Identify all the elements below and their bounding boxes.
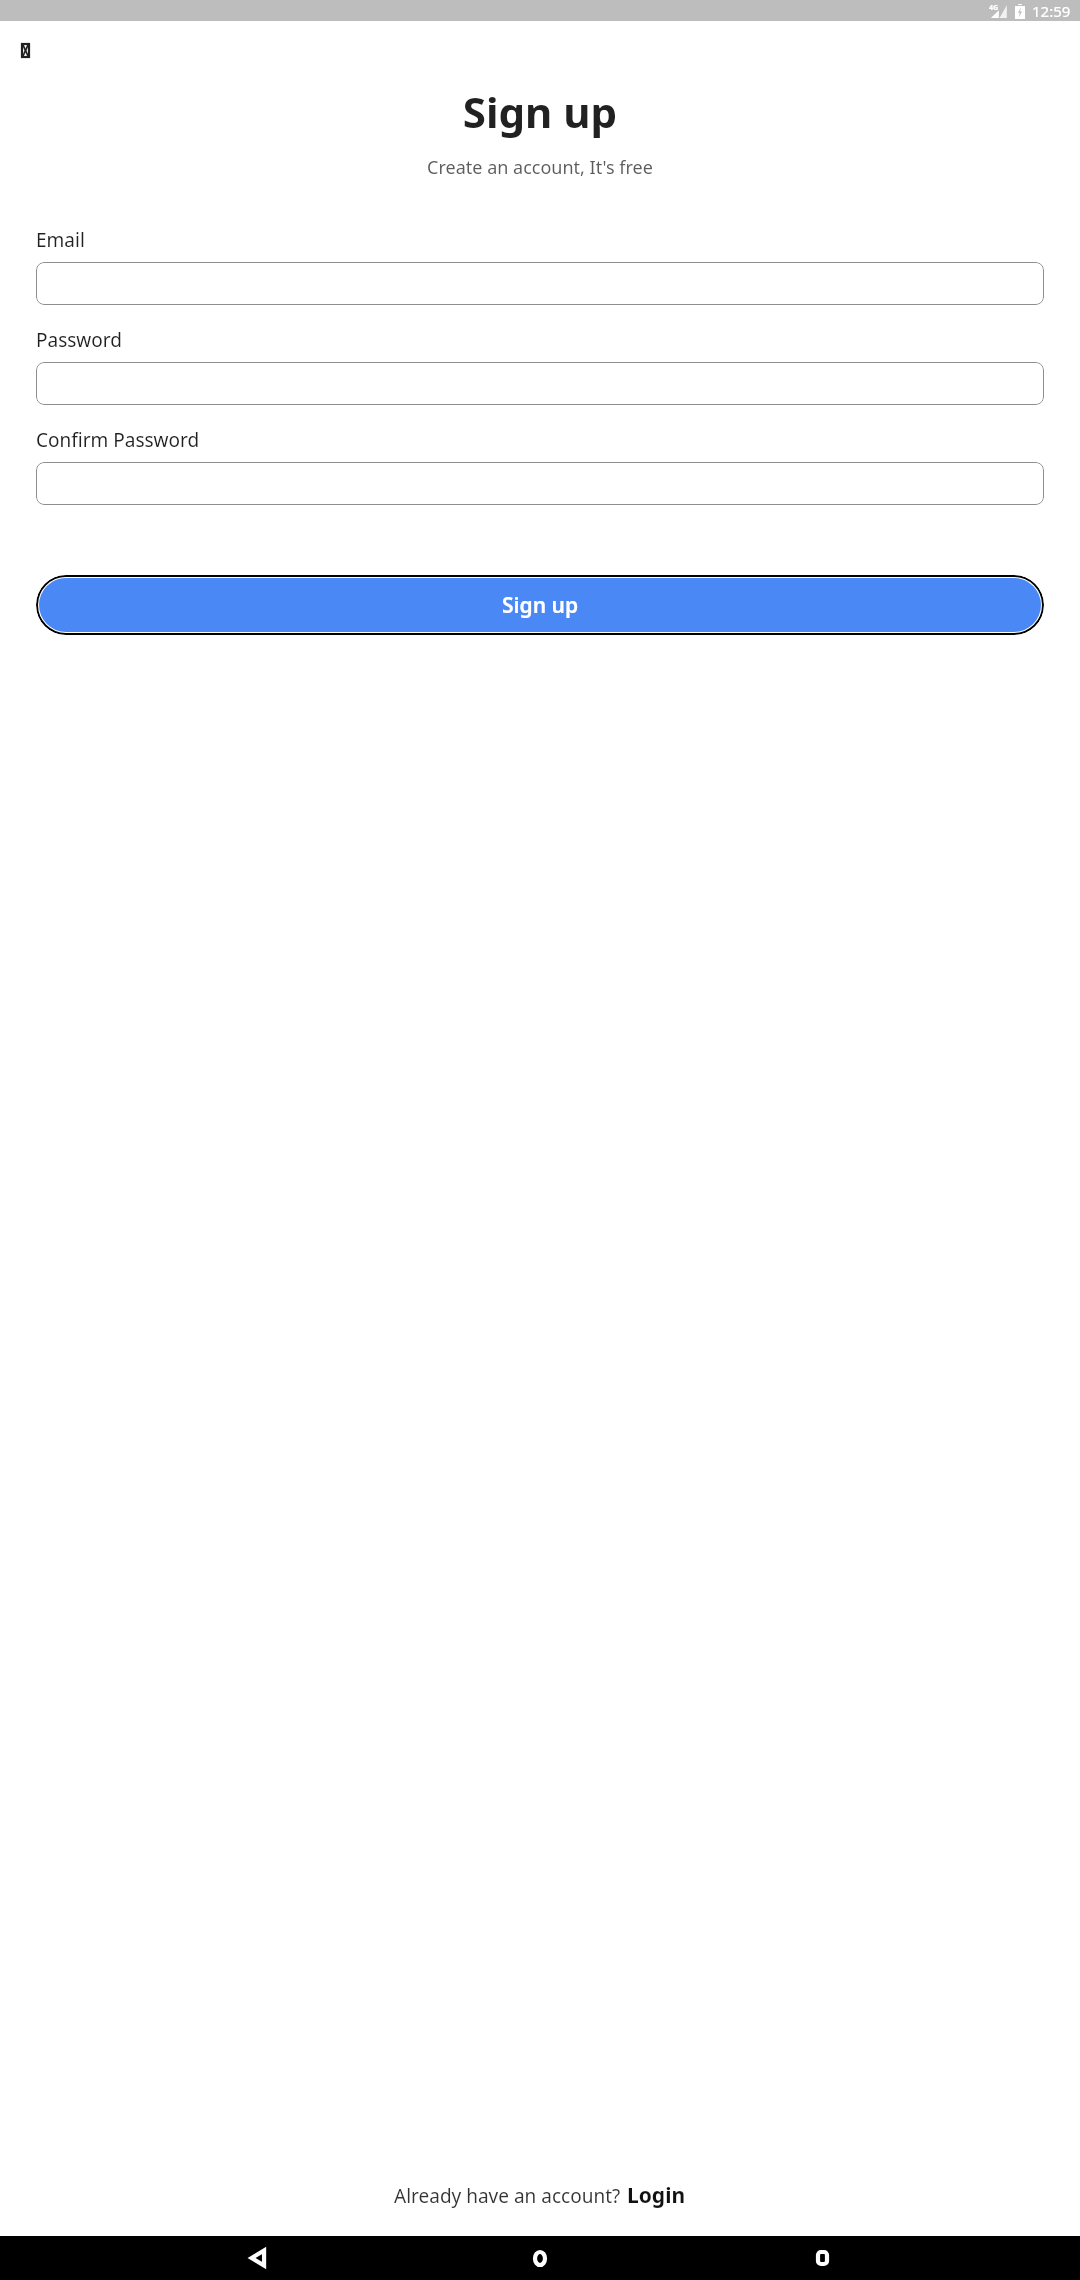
button[interactable]: Recent apps	[798, 2236, 846, 2280]
staticText: Sign up	[502, 591, 579, 620]
button[interactable]	[36, 462, 1044, 505]
button[interactable]	[36, 362, 1044, 405]
staticText: Already have an account?	[394, 2183, 621, 2209]
staticText: Login	[627, 2181, 686, 2210]
staticText: Confirm Password	[36, 427, 200, 453]
staticText: Email	[36, 227, 85, 253]
staticText: Create an account, It's free	[0, 155, 1080, 180]
staticText: 12:59	[1032, 1, 1071, 21]
staticText: Sign up	[0, 83, 1080, 140]
button[interactable]: Back	[234, 2236, 282, 2280]
button[interactable]: Back	[22, 44, 29, 57]
button[interactable]: Home	[516, 2236, 564, 2280]
staticText: 4G	[989, 3, 999, 13]
button[interactable]	[36, 262, 1044, 305]
button[interactable]: Login	[627, 2181, 686, 2210]
button[interactable]: Sign up	[36, 575, 1044, 635]
staticText: Password	[36, 327, 122, 353]
